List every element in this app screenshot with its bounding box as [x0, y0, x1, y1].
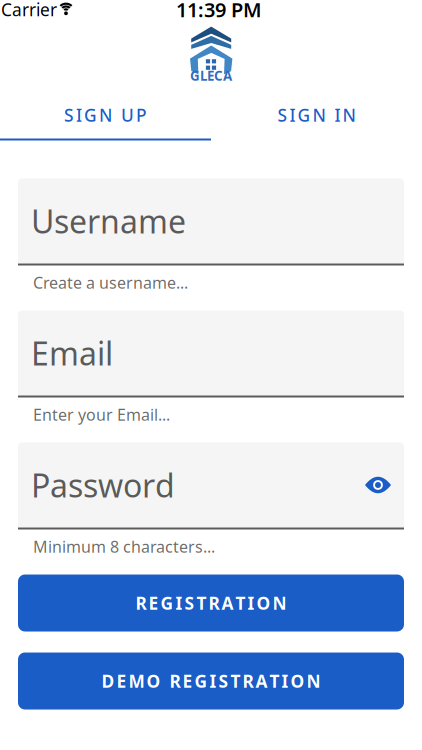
staticText: GLECA	[190, 67, 232, 84]
staticText: S I G N U P	[64, 103, 147, 126]
button[interactable]: S I G N U P	[0, 100, 211, 130]
staticText: Email	[31, 332, 113, 374]
button[interactable]: Email field	[18, 310, 404, 395]
staticText: D E M O R E G I S T R A T I O N	[101, 669, 320, 692]
button[interactable]: Password field	[18, 442, 404, 527]
staticText: Create a username...	[33, 272, 188, 293]
staticText: 11:39 PM	[176, 0, 262, 23]
button[interactable]: Show password	[365, 477, 391, 493]
staticText: R E G I S T R A T I O N	[135, 591, 286, 614]
staticText: Minimum 8 characters...	[33, 536, 215, 557]
staticText: Password	[31, 464, 175, 506]
button[interactable]: Username field	[18, 178, 404, 263]
staticText: Enter your Email...	[33, 404, 170, 425]
button[interactable]: R E G I S T R A T I O N	[18, 574, 404, 631]
staticText: Carrier	[1, 0, 57, 21]
button[interactable]: D E M O R E G I S T R A T I O N	[18, 652, 404, 709]
staticText: Username	[31, 200, 186, 242]
button[interactable]: S I G N I N	[211, 100, 422, 130]
staticText: S I G N I N	[277, 103, 355, 126]
